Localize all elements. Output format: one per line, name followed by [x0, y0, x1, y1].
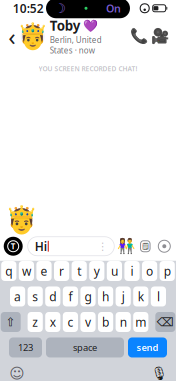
- button[interactable]: z: [28, 312, 43, 332]
- staticText: k: [138, 288, 144, 304]
- button[interactable]: y: [89, 261, 104, 281]
- button[interactable]: Emoji: [7, 365, 27, 381]
- staticText: u: [111, 263, 118, 279]
- button[interactable]: More: [157, 237, 171, 256]
- button[interactable]: Notes: [138, 237, 152, 256]
- staticText: 🎙: [151, 366, 168, 381]
- button[interactable]: Back: [3, 22, 21, 50]
- staticText: ‹: [8, 20, 15, 52]
- staticText: ⋮: [97, 240, 108, 252]
- staticText: b: [102, 314, 109, 330]
- staticText: n: [120, 314, 127, 330]
- button[interactable]: v: [80, 312, 96, 332]
- staticText: 🤴: [17, 22, 49, 51]
- staticText: t: [77, 263, 81, 279]
- staticText: w: [22, 263, 31, 279]
- staticText: 123: [18, 341, 33, 354]
- staticText: ⌫: [157, 315, 174, 329]
- staticText: 👫: [117, 238, 135, 255]
- staticText: j: [122, 288, 125, 304]
- staticText: 10:52: [13, 0, 44, 16]
- staticText: ☽: [54, 1, 66, 16]
- staticText: c: [67, 314, 73, 330]
- button[interactable]: k: [133, 286, 148, 306]
- staticText: ☺: [9, 365, 24, 381]
- staticText: l: [157, 288, 160, 304]
- button[interactable]: t: [72, 261, 87, 281]
- button[interactable]: d: [45, 286, 60, 306]
- button[interactable]: 123: [9, 337, 42, 357]
- staticText: m: [135, 314, 146, 330]
- staticText: r: [59, 263, 64, 279]
- button[interactable]: r: [54, 261, 69, 281]
- button[interactable]: Shift: [1, 312, 21, 332]
- button[interactable]: g: [80, 286, 96, 306]
- staticText: Berlin, United States · now: [50, 34, 102, 56]
- button[interactable]: u: [107, 261, 122, 281]
- button[interactable]: i: [124, 261, 140, 281]
- staticText: d: [49, 288, 56, 304]
- staticText: o: [146, 263, 153, 279]
- staticText: 🤴: [5, 204, 38, 235]
- button[interactable]: a: [10, 286, 25, 306]
- staticText: T: [11, 241, 16, 251]
- button[interactable]: Text format: [4, 237, 23, 256]
- staticText: Toby: [50, 17, 81, 34]
- button[interactable]: n: [116, 312, 131, 332]
- staticText: z: [32, 314, 38, 330]
- button[interactable]: x: [45, 312, 60, 332]
- staticText: send: [136, 341, 158, 354]
- staticText: YOU SCREEN RECORDED CHAT!: [38, 64, 137, 73]
- staticText: x: [50, 314, 56, 330]
- staticText: a: [14, 288, 21, 304]
- button[interactable]: Dictate: [149, 365, 169, 381]
- button[interactable]: Video call: [149, 23, 171, 49]
- button[interactable]: space: [46, 337, 124, 357]
- staticText: On: [106, 1, 121, 15]
- staticText: ⇧: [6, 315, 16, 329]
- staticText: y: [94, 263, 100, 279]
- button[interactable]: b: [98, 312, 113, 332]
- button[interactable]: j: [116, 286, 131, 306]
- staticText: 📞: [130, 28, 148, 45]
- staticText: 🎥: [151, 28, 169, 45]
- staticText: s: [32, 288, 38, 304]
- button[interactable]: o: [142, 261, 157, 281]
- staticText: 🗒: [141, 242, 149, 250]
- button[interactable]: w: [19, 261, 34, 281]
- button[interactable]: e: [36, 261, 52, 281]
- staticText: f: [68, 288, 72, 304]
- staticText: e: [40, 263, 47, 279]
- button[interactable]: s: [28, 286, 43, 306]
- staticText: p: [164, 263, 171, 279]
- staticText: Hi: [35, 238, 47, 254]
- button[interactable]: p: [160, 261, 175, 281]
- staticText: v: [85, 314, 91, 330]
- staticText: 💜: [83, 19, 98, 32]
- button[interactable]: Stickers: [119, 237, 133, 256]
- button[interactable]: f: [63, 286, 78, 306]
- button[interactable]: m: [133, 312, 148, 332]
- staticText: h: [102, 288, 109, 304]
- button[interactable]: send: [128, 337, 167, 357]
- staticText: i: [130, 263, 133, 279]
- button[interactable]: c: [63, 312, 78, 332]
- button[interactable]: 🤴: [21, 17, 129, 56]
- staticText: space: [73, 341, 97, 354]
- button[interactable]: l: [151, 286, 166, 306]
- button[interactable]: q: [1, 261, 16, 281]
- button[interactable]: h: [98, 286, 113, 306]
- staticText: q: [5, 263, 12, 279]
- button[interactable]: Audio call: [129, 23, 149, 49]
- staticText: g: [84, 288, 91, 304]
- button[interactable]: Delete: [155, 312, 175, 332]
